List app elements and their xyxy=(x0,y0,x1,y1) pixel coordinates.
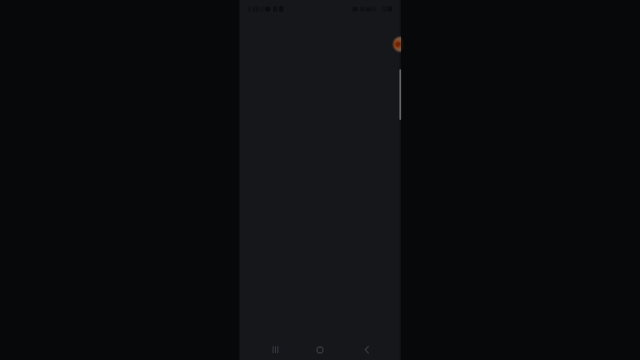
button[interactable]: Back xyxy=(356,340,378,360)
button[interactable]: Home xyxy=(309,340,331,360)
button[interactable]: Account xyxy=(386,37,401,52)
button[interactable]: Recent apps xyxy=(265,340,287,360)
